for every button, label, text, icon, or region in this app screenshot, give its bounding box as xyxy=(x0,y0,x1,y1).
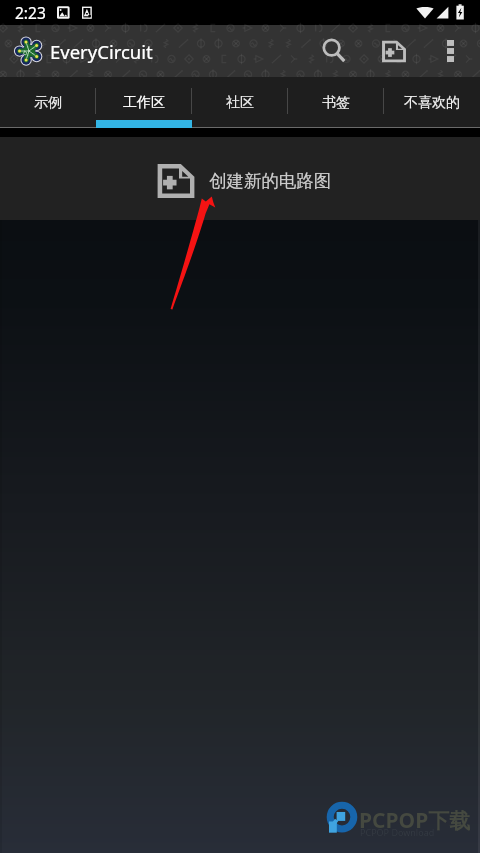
button[interactable]: New circuit xyxy=(371,25,416,77)
button[interactable]: 不喜欢的 xyxy=(384,77,480,128)
staticText: 书签 xyxy=(322,94,350,112)
button[interactable]: 社区 xyxy=(192,77,288,128)
staticText: PCPOP下载 xyxy=(359,806,471,835)
button[interactable]: Search xyxy=(308,25,360,77)
button[interactable]: 工作区 xyxy=(96,77,192,128)
staticText: 创建新的电路图 xyxy=(209,170,332,192)
button[interactable]: 创建新的电路图 xyxy=(0,137,480,220)
staticText: 2:23 xyxy=(15,2,46,23)
button[interactable]: 示例 xyxy=(0,77,96,128)
staticText: 不喜欢的 xyxy=(404,94,460,112)
staticText: 社区 xyxy=(226,94,254,112)
staticText: PCPOP Download xyxy=(360,826,435,838)
button[interactable]: More options xyxy=(430,25,470,77)
staticText: 工作区 xyxy=(123,94,165,112)
staticText: EveryCircuit xyxy=(50,39,153,64)
staticText: 示例 xyxy=(34,94,62,112)
button[interactable]: 书签 xyxy=(288,77,384,128)
